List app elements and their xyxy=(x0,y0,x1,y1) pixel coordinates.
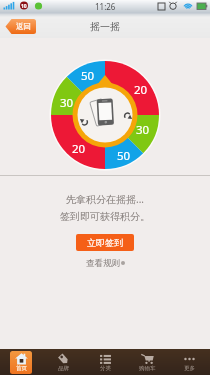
staticText: 返回 xyxy=(16,22,31,31)
staticText: 签到即可获得积分。 xyxy=(0,210,210,223)
staticText: 20 xyxy=(134,82,148,98)
staticText: 查看规则 xyxy=(86,258,120,269)
button[interactable]: 查看规则 xyxy=(0,257,210,269)
button[interactable]: 购物车 xyxy=(126,349,168,375)
staticText: 品牌 xyxy=(58,365,69,372)
staticText: 购物车 xyxy=(139,365,156,372)
staticText: 20 xyxy=(72,141,86,157)
staticText: 50 xyxy=(117,148,131,164)
button[interactable]: 立即签到 xyxy=(76,234,134,251)
button[interactable]: 更多 xyxy=(168,349,210,375)
button[interactable]: 首页 xyxy=(0,349,42,375)
staticText: 摇一摇 xyxy=(90,20,120,33)
staticText: 首页 xyxy=(16,365,27,372)
staticText: 立即签到 xyxy=(87,237,123,248)
staticText: 分类 xyxy=(100,365,111,372)
button[interactable]: 品牌 xyxy=(42,349,84,375)
button[interactable]: 返回 xyxy=(5,19,36,34)
button[interactable]: 分类 xyxy=(84,349,126,375)
staticText: 11:26 xyxy=(95,1,116,12)
staticText: 30 xyxy=(60,95,74,111)
staticText: 更多 xyxy=(184,365,195,372)
staticText: 50 xyxy=(81,68,95,84)
staticText: 10 xyxy=(21,3,27,10)
staticText: 先拿积分在摇摇... xyxy=(0,192,210,206)
staticText: 30 xyxy=(136,122,150,138)
